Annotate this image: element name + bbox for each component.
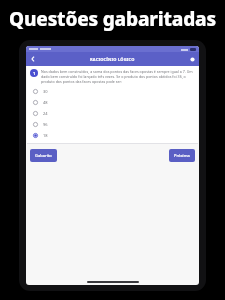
- staticText: 18: [43, 133, 48, 138]
- staticText: 48: [43, 100, 48, 105]
- staticText: Nos dados bem construídos, a soma dos po…: [41, 69, 194, 84]
- button[interactable]: 24: [27, 108, 198, 119]
- button[interactable]: 48: [27, 97, 198, 108]
- staticText: Próxima: [174, 153, 190, 158]
- staticText: 24: [43, 111, 48, 116]
- button[interactable]: 96: [27, 119, 198, 130]
- staticText: Gabarito: [35, 153, 52, 158]
- staticText: RACIOCÍNIO LÓGICO: [90, 57, 135, 62]
- button[interactable]: Settings: [185, 52, 199, 66]
- button[interactable]: Próxima: [169, 149, 195, 162]
- staticText: 96: [43, 122, 48, 127]
- button[interactable]: 30: [27, 86, 198, 97]
- button[interactable]: 18: [27, 130, 198, 141]
- button[interactable]: Gabarito: [30, 149, 57, 162]
- staticText: Questões gabaritadas: [0, 6, 225, 32]
- button[interactable]: Back: [26, 52, 40, 66]
- staticText: 1: [33, 71, 36, 76]
- staticText: 30: [43, 89, 48, 94]
